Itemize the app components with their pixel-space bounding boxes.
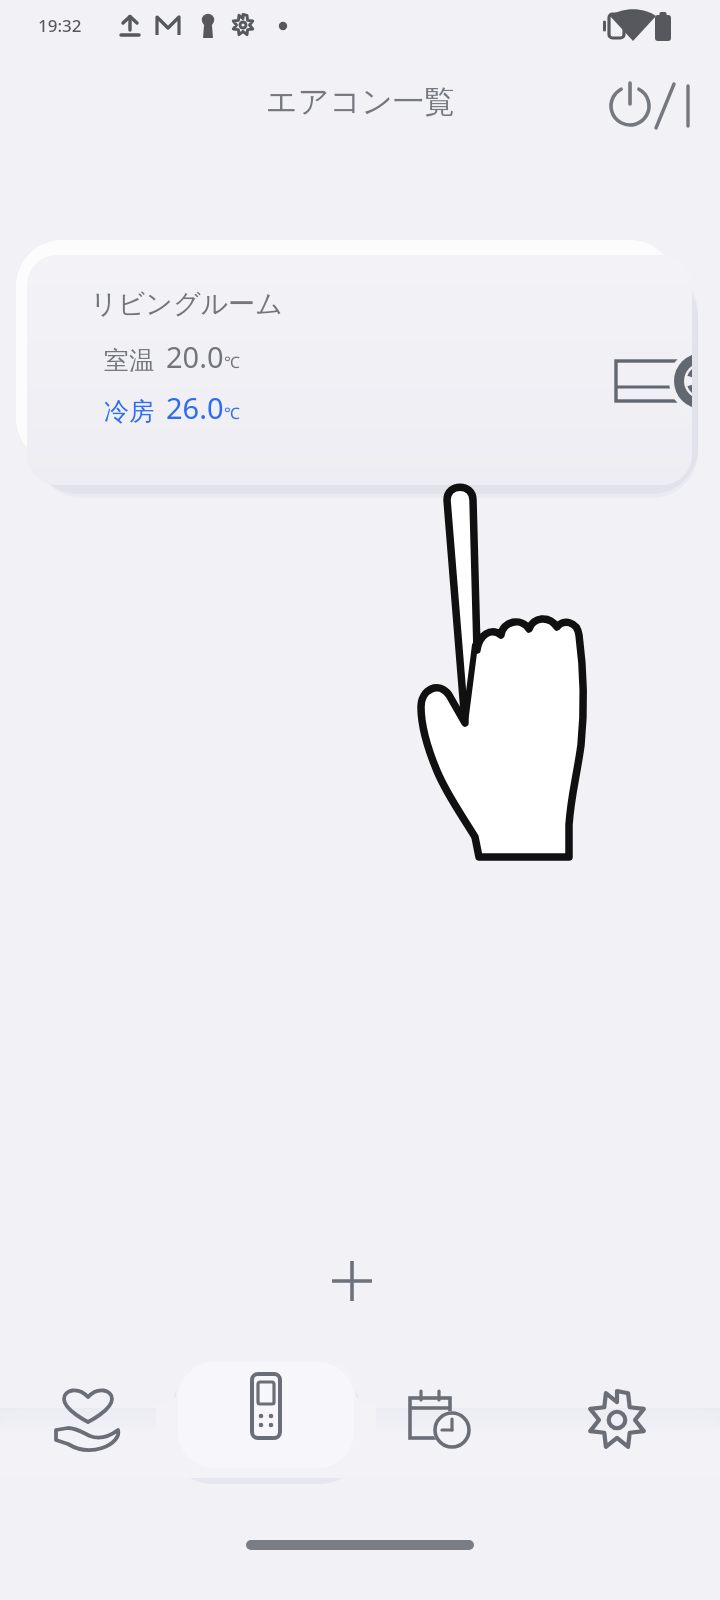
- staticText: 冷房: [104, 396, 154, 427]
- staticText: リビングルーム: [90, 287, 283, 321]
- staticText: 室温: [104, 345, 154, 376]
- button[interactable]: Power on off: [600, 76, 680, 136]
- button[interactable]: Schedule: [380, 1372, 500, 1468]
- staticText: 20.0: [166, 337, 224, 376]
- staticText: エアコン一覧: [266, 82, 455, 121]
- button[interactable]: Favorites: [28, 1372, 148, 1468]
- button[interactable]: Settings: [557, 1372, 677, 1468]
- button[interactable]: Remote control: [204, 1358, 324, 1454]
- staticText: ℃: [224, 351, 240, 373]
- staticText: 19:32: [38, 14, 82, 37]
- staticText: ℃: [224, 402, 240, 424]
- button[interactable]: リビングルーム: [27, 255, 692, 485]
- staticText: 26.0: [166, 388, 224, 427]
- button[interactable]: Add air conditioner: [312, 1243, 392, 1319]
